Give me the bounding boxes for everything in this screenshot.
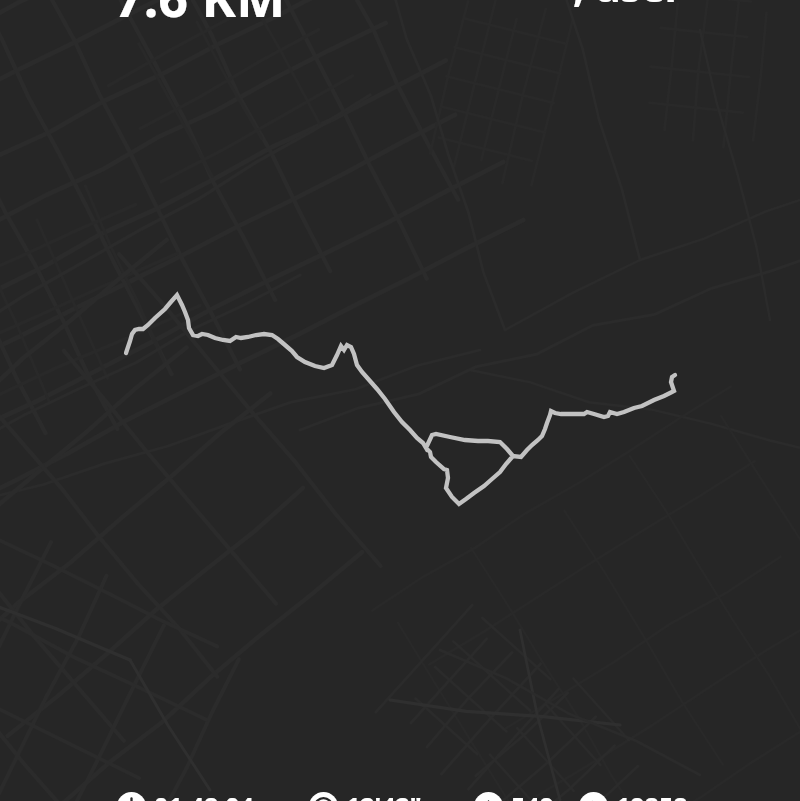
- button[interactable]: 7.6 KM: [114, 0, 286, 32]
- button[interactable]: , user: [573, 0, 683, 13]
- button[interactable]: Calories: [474, 789, 554, 801]
- staticText: 7.6 KM: [114, 0, 286, 32]
- button[interactable]: Steps: [579, 789, 688, 801]
- staticText: 12'42": [346, 789, 422, 801]
- staticText: , user: [573, 0, 683, 13]
- staticText: 01:48:04: [154, 789, 254, 801]
- staticText: 549: [511, 789, 554, 801]
- button[interactable]: Average pace: [309, 789, 422, 801]
- button[interactable]: Duration: [117, 789, 254, 801]
- staticText: 19858: [616, 789, 688, 801]
